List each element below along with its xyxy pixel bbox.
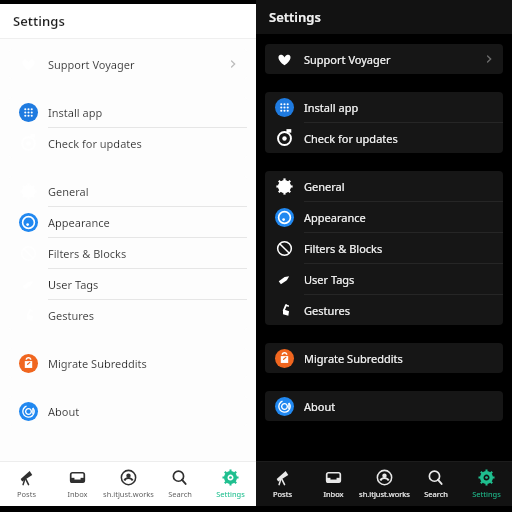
button[interactable]: Check for updates [265, 123, 503, 153]
staticText: Gestures [304, 303, 495, 318]
button[interactable]: General [9, 176, 247, 206]
button[interactable]: Install app [265, 92, 503, 122]
staticText: Gestures [48, 308, 239, 323]
staticText: General [304, 179, 495, 194]
button[interactable]: Gestures [9, 300, 247, 330]
staticText: sh.itjust.works [103, 489, 154, 499]
staticText: User Tags [48, 277, 239, 292]
staticText: Posts [17, 489, 36, 499]
button[interactable]: Posts [256, 462, 308, 506]
button[interactable]: User Tags [9, 269, 247, 299]
button[interactable]: Settings [205, 462, 256, 506]
staticText: Search [424, 489, 448, 499]
staticText: Settings [472, 489, 501, 499]
button[interactable]: Appearance [9, 207, 247, 237]
staticText: Support Voyager [48, 57, 227, 72]
staticText: User Tags [304, 272, 495, 287]
staticText: Posts [273, 489, 292, 499]
button[interactable]: Filters & Blocks [265, 233, 503, 263]
staticText: Install app [48, 105, 239, 120]
staticText: Appearance [48, 215, 239, 230]
button[interactable]: Inbox [52, 462, 103, 506]
button[interactable]: Migrate Subreddits [265, 343, 503, 373]
staticText: Install app [304, 100, 495, 115]
staticText: Inbox [323, 489, 344, 499]
button[interactable]: sh.itjust.works [103, 462, 154, 506]
staticText: Support Voyager [304, 52, 483, 67]
staticText: Check for updates [48, 136, 239, 151]
staticText: sh.itjust.works [359, 489, 410, 499]
staticText: Migrate Subreddits [48, 356, 239, 371]
staticText: About [48, 404, 239, 419]
staticText: Search [168, 489, 192, 499]
button[interactable]: Filters & Blocks [9, 238, 247, 268]
button[interactable]: General [265, 171, 503, 201]
button[interactable]: Support Voyager [9, 49, 247, 79]
button[interactable]: Posts [0, 462, 52, 506]
button[interactable]: Migrate Subreddits [9, 348, 247, 378]
button[interactable]: Search [410, 462, 461, 506]
button[interactable]: Support Voyager [265, 44, 503, 74]
button[interactable]: Inbox [308, 462, 359, 506]
button[interactable]: About [265, 391, 503, 421]
staticText: General [48, 184, 239, 199]
staticText: Settings [216, 489, 245, 499]
staticText: Migrate Subreddits [304, 351, 495, 366]
staticText: About [304, 399, 495, 414]
staticText: Inbox [67, 489, 88, 499]
staticText: Filters & Blocks [48, 246, 239, 261]
staticText: Check for updates [304, 131, 495, 146]
staticText: Settings [269, 8, 321, 26]
button[interactable]: User Tags [265, 264, 503, 294]
button[interactable]: Install app [9, 97, 247, 127]
staticText: Filters & Blocks [304, 241, 495, 256]
button[interactable]: Search [154, 462, 205, 506]
button[interactable]: Settings [461, 462, 512, 506]
button[interactable]: Check for updates [9, 128, 247, 158]
button[interactable]: About [9, 396, 247, 426]
staticText: Appearance [304, 210, 495, 225]
button[interactable]: sh.itjust.works [359, 462, 410, 506]
button[interactable]: Gestures [265, 295, 503, 325]
button[interactable]: Appearance [265, 202, 503, 232]
staticText: Settings [13, 12, 65, 30]
